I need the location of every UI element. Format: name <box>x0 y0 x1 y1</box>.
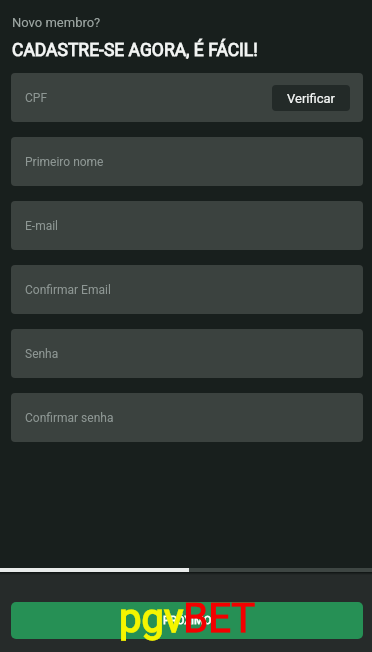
staticText: Confirmar senha <box>25 411 114 425</box>
staticText: Novo membro? <box>12 15 101 30</box>
button[interactable]: Confirmar senha <box>11 393 363 442</box>
staticText: Primeiro nome <box>25 155 104 169</box>
staticText: CADASTRE-SE AGORA, É FÁCIL! <box>12 40 258 61</box>
staticText: E-mail <box>25 219 59 233</box>
staticText: PRÓXIMO <box>163 614 212 627</box>
staticText: Confirmar Email <box>25 283 111 297</box>
staticText: CPF <box>25 91 48 105</box>
button[interactable]: CPF <box>11 73 363 122</box>
button[interactable]: Primeiro nome <box>11 137 363 186</box>
button[interactable]: Senha <box>11 329 363 378</box>
staticText: Senha <box>25 347 59 361</box>
button[interactable]: Verificar <box>272 85 350 111</box>
staticText: Verificar <box>287 91 335 106</box>
button[interactable]: PRÓXIMO <box>11 602 363 639</box>
button[interactable]: Confirmar Email <box>11 265 363 314</box>
button[interactable]: E-mail <box>11 201 363 250</box>
staticText: pgvBET <box>119 595 256 642</box>
